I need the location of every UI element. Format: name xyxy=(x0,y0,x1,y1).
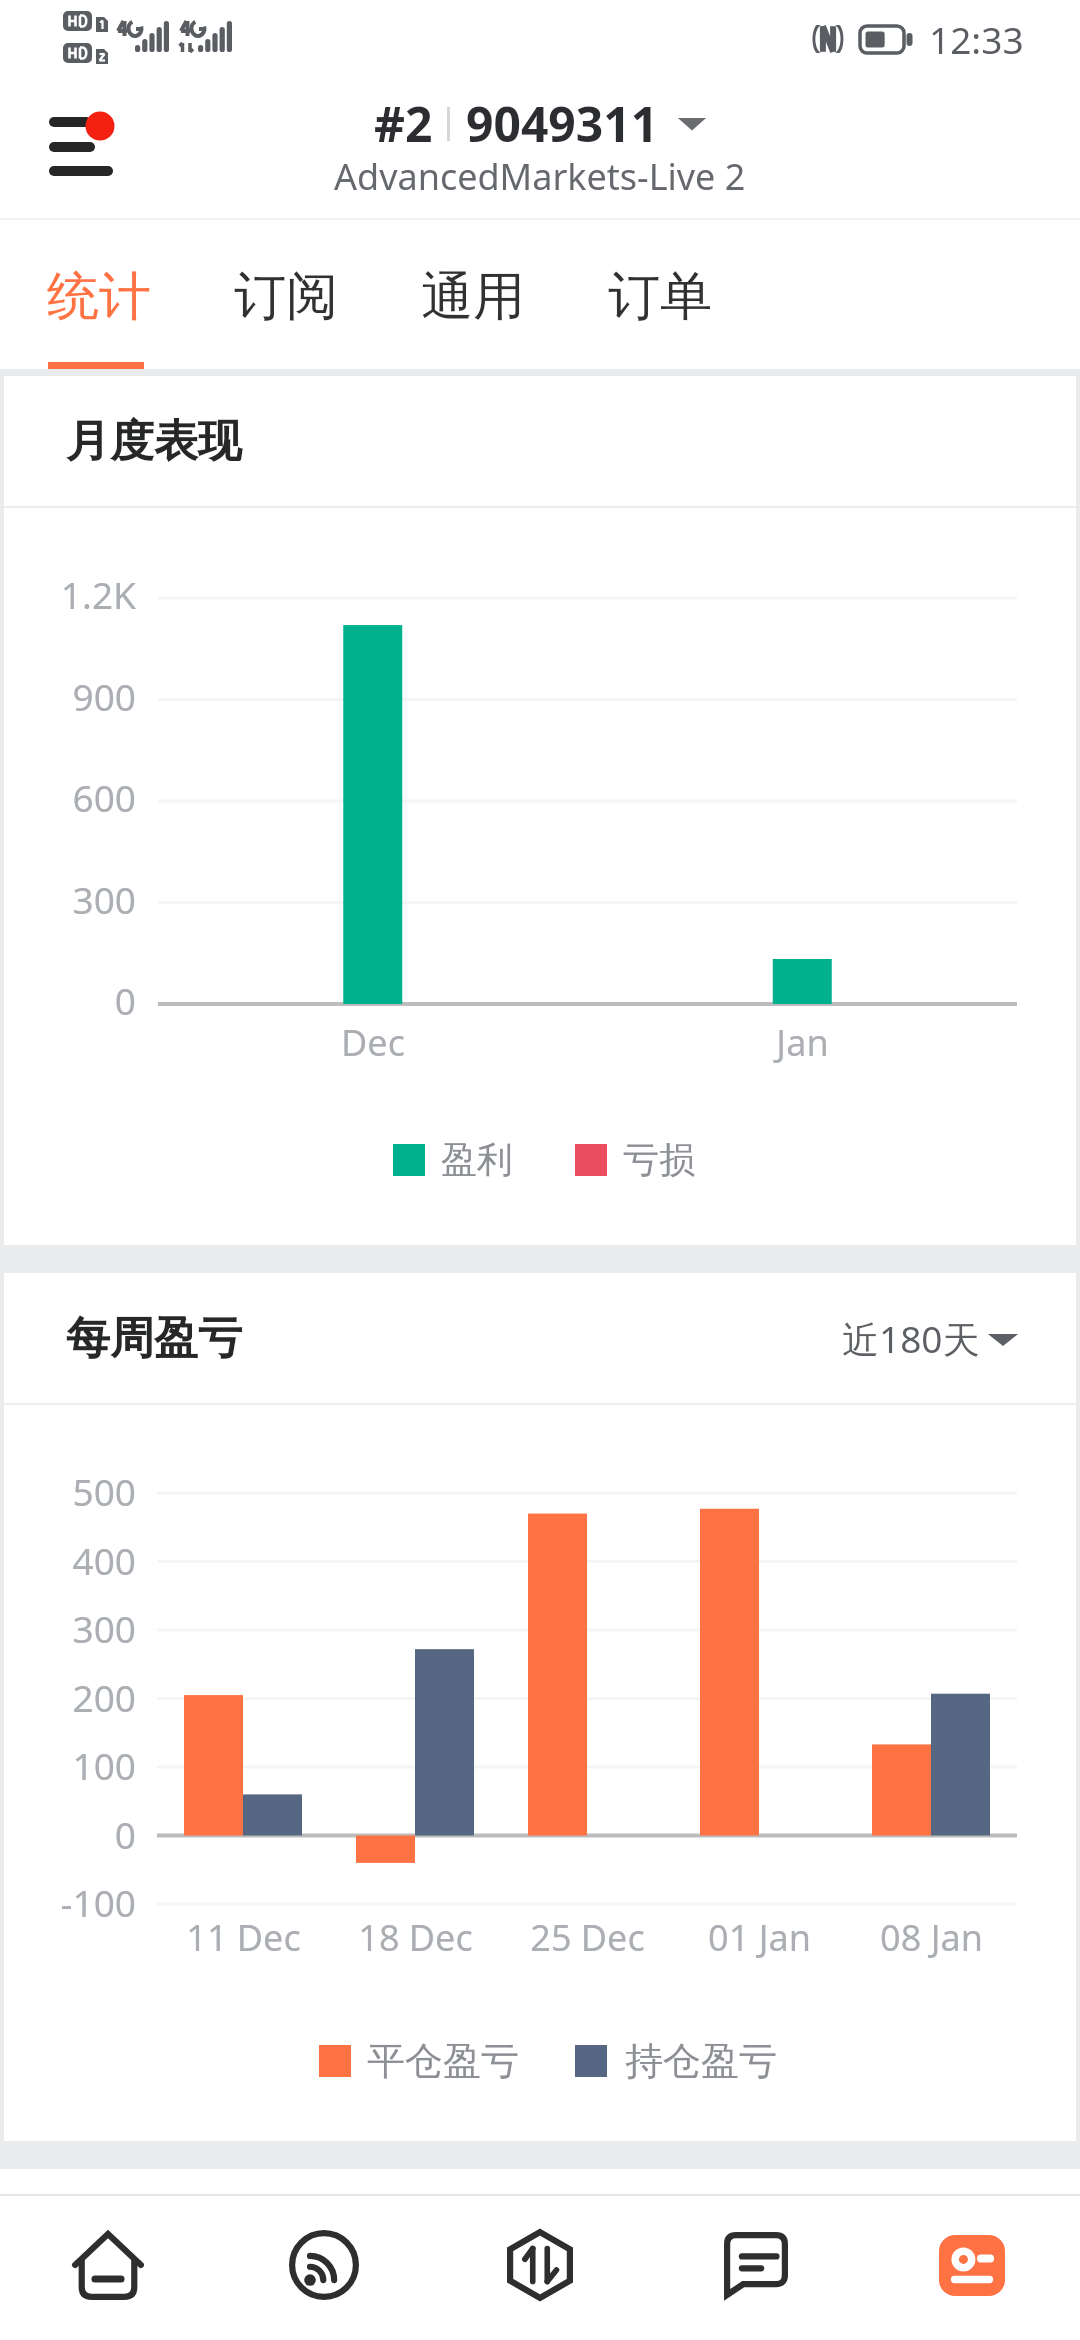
button[interactable]: 通用 xyxy=(377,220,565,369)
staticText: 25 Dec xyxy=(530,1913,645,1962)
staticText: 月度表现 xyxy=(66,414,242,469)
staticText: 持仓盈亏 xyxy=(625,2037,777,2085)
button[interactable]: Menu xyxy=(28,92,128,182)
button[interactable]: #2 xyxy=(368,91,713,156)
staticText: 平仓盈亏 xyxy=(367,2037,519,2085)
button[interactable]: 订单 xyxy=(564,220,752,369)
staticText: 通用 xyxy=(421,264,525,330)
button[interactable]: Trade xyxy=(432,2193,648,2337)
staticText: 300 xyxy=(72,874,136,924)
staticText: 近180天 xyxy=(842,1313,980,1364)
staticText: 0 xyxy=(114,975,136,1025)
staticText: 1.2K xyxy=(60,569,136,619)
staticText: Dec xyxy=(341,1018,405,1067)
staticText: 盈利 xyxy=(441,1137,513,1182)
staticText: 01 Jan xyxy=(708,1913,811,1962)
staticText: 订阅 xyxy=(234,264,338,330)
staticText: 12:33 xyxy=(929,14,1024,64)
staticText: 400 xyxy=(72,1535,136,1585)
staticText: 订单 xyxy=(608,264,712,330)
staticText: Jan xyxy=(776,1018,829,1067)
staticText: 每周盈亏 xyxy=(66,1311,242,1366)
staticText: 11 Dec xyxy=(186,1913,301,1962)
button[interactable]: Home xyxy=(0,2193,216,2337)
staticText: AdvancedMarkets-Live 2 xyxy=(334,152,746,201)
staticText: 300 xyxy=(72,1603,136,1653)
button[interactable]: Messages xyxy=(648,2193,864,2337)
staticText: 200 xyxy=(72,1672,136,1722)
staticText: #2 xyxy=(374,91,433,156)
button[interactable]: 统计 xyxy=(3,220,191,369)
staticText: 900 xyxy=(72,671,136,721)
staticText: 统计 xyxy=(47,264,151,330)
staticText: 9049311 xyxy=(466,91,659,156)
button[interactable]: Account xyxy=(864,2193,1080,2337)
staticText: 亏损 xyxy=(623,1137,695,1182)
staticText: 500 xyxy=(72,1466,136,1516)
staticText: 18 Dec xyxy=(358,1913,473,1962)
staticText: 600 xyxy=(72,772,136,822)
button[interactable]: 订阅 xyxy=(190,220,378,369)
button[interactable]: Signals xyxy=(216,2193,432,2337)
staticText: 0 xyxy=(114,1809,136,1859)
staticText: -100 xyxy=(60,1877,136,1927)
button[interactable]: 近180天 xyxy=(842,1313,1076,1364)
staticText: 08 Jan xyxy=(880,1913,983,1962)
staticText: 100 xyxy=(72,1740,136,1790)
